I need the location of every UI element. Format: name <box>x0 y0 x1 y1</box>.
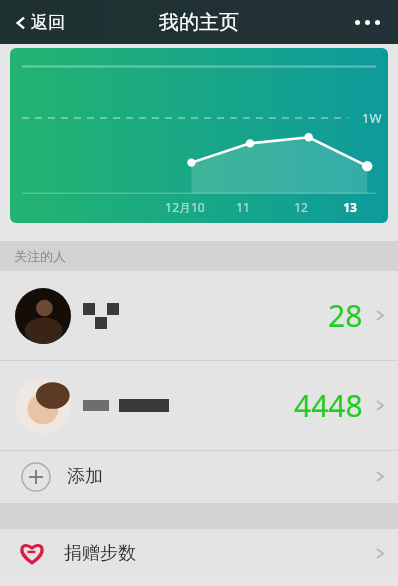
button[interactable]: 4448 <box>0 361 398 450</box>
button[interactable]: 返回 <box>10 8 69 37</box>
staticText: 13 <box>343 199 357 215</box>
staticText: 28 <box>328 295 363 336</box>
staticText: 返回 <box>31 12 65 33</box>
staticText: 我的主页 <box>159 10 239 35</box>
staticText: 11 <box>236 199 250 215</box>
button[interactable]: 添加 <box>0 451 398 502</box>
staticText: 4448 <box>294 385 363 426</box>
button[interactable]: 28 <box>0 271 398 360</box>
staticText: 添加 <box>67 465 103 488</box>
staticText: 12月10 <box>165 199 205 215</box>
staticText: 关注的人 <box>14 248 66 264</box>
button[interactable]: 捐赠步数 <box>0 529 398 577</box>
button[interactable]: 1W <box>10 48 388 223</box>
button[interactable]: More options <box>349 14 386 31</box>
staticText: 捐赠步数 <box>64 542 136 565</box>
staticText: 1W <box>362 109 382 127</box>
staticText: 12 <box>294 199 308 215</box>
